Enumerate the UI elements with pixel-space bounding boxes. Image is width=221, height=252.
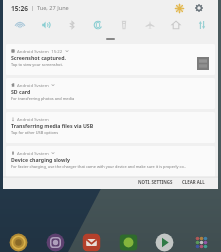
staticText: | Tue, 27 June xyxy=(28,4,69,12)
button[interactable]: Camera xyxy=(119,233,138,252)
staticText: 15:22 xyxy=(49,48,63,53)
button[interactable]: Android System xyxy=(6,78,215,109)
staticText: NOTI. SETTINGS xyxy=(138,179,173,184)
button[interactable]: Auto rotate xyxy=(85,16,111,33)
button[interactable]: Email xyxy=(82,233,101,252)
staticText: SD card xyxy=(11,88,31,95)
staticText: Android System xyxy=(17,82,49,87)
button[interactable]: Sound xyxy=(33,16,59,33)
button[interactable]: Android System xyxy=(6,44,215,75)
staticText: Android System xyxy=(17,116,49,121)
staticText: Transferring media files via USB xyxy=(11,122,94,129)
button[interactable]: Mobile data xyxy=(189,16,215,33)
button[interactable]: Apps xyxy=(192,233,211,252)
button[interactable]: Bluetooth xyxy=(59,16,85,33)
button[interactable]: Screenshot preview xyxy=(197,57,209,70)
staticText: CLEAR ALL xyxy=(182,179,205,184)
staticText: Tap for other USB options xyxy=(11,130,59,135)
button[interactable]: Instagram xyxy=(46,233,65,252)
button[interactable]: Flashlight xyxy=(111,16,137,33)
staticText: Tap to view your screenshot. xyxy=(11,62,63,67)
staticText: Device charging slowly xyxy=(11,156,70,163)
button[interactable]: CLEAR ALL xyxy=(179,177,208,186)
button[interactable]: Smart View xyxy=(163,16,189,33)
button[interactable]: Android System xyxy=(6,112,215,143)
button[interactable]: Android System xyxy=(6,146,215,177)
button[interactable]: Play Store xyxy=(155,233,174,252)
staticText: For faster charging, use the charger tha… xyxy=(11,164,186,169)
staticText: 15:26 xyxy=(11,4,28,13)
button[interactable]: NOTI. SETTINGS xyxy=(135,177,176,186)
button[interactable]: Wi-Fi xyxy=(7,16,33,33)
staticText: Android System xyxy=(17,48,49,53)
button[interactable]: Settings xyxy=(191,0,207,16)
button[interactable]: Airplane mode xyxy=(137,16,163,33)
button[interactable]: Gallery xyxy=(9,233,28,252)
staticText: Android System xyxy=(17,150,49,155)
staticText: Screenshot captured. xyxy=(11,54,66,61)
button[interactable]: Brightness xyxy=(171,0,187,16)
staticText: For transferring photos and media xyxy=(11,96,75,101)
